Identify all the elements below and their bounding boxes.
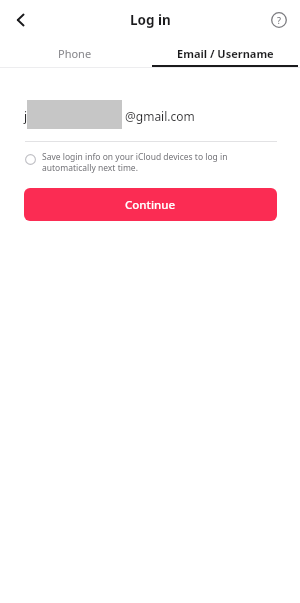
staticText: j [24,108,28,124]
staticText: @gmail.com [125,108,195,124]
button[interactable]: Email / Username [150,40,300,67]
staticText: ? [277,14,282,26]
button[interactable]: Help [264,5,294,35]
staticText: Email / Username [177,46,274,61]
button[interactable]: Save login info on your iCloud devices t… [24,151,274,173]
button[interactable]: j [0,101,300,131]
button[interactable]: Continue [24,188,277,221]
staticText: Log in [130,11,171,29]
staticText: Phone [58,46,92,61]
button[interactable]: Phone [0,40,150,67]
button[interactable]: Back [4,3,38,37]
staticText: Continue [125,197,176,213]
staticText: Save login info on your iCloud devices t… [42,151,274,173]
